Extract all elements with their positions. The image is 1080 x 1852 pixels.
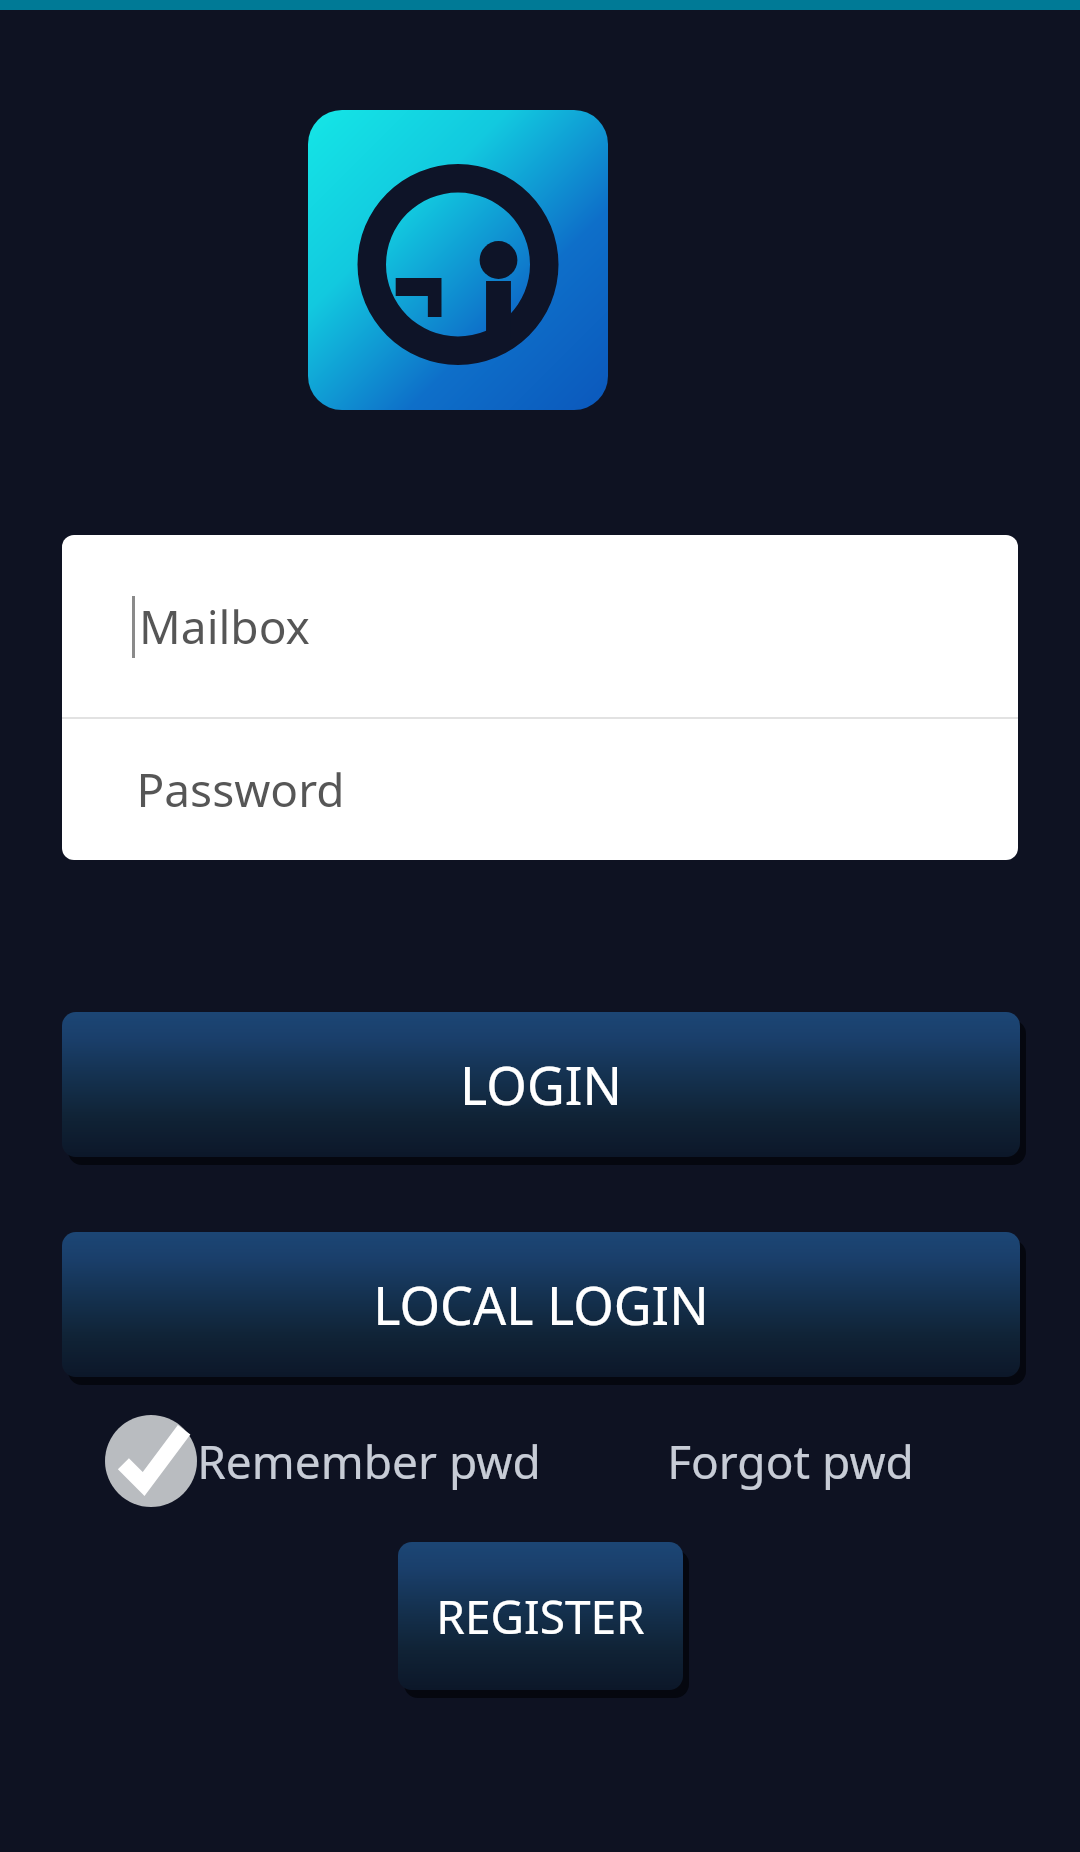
- staticText: REGISTER: [436, 1585, 645, 1648]
- button[interactable]: Remember pwd: [197, 1418, 541, 1504]
- staticText: LOGIN: [460, 1049, 622, 1120]
- button[interactable]: Mailbox: [62, 535, 1018, 717]
- button[interactable]: REGISTER: [398, 1542, 683, 1690]
- button[interactable]: Password: [62, 719, 1018, 860]
- staticText: LOCAL LOGIN: [373, 1269, 709, 1340]
- button[interactable]: Forgot pwd: [667, 1418, 914, 1504]
- staticText: Forgot pwd: [667, 1430, 914, 1493]
- button[interactable]: Remember password checkbox: [105, 1415, 197, 1507]
- staticText: Password: [136, 758, 345, 821]
- button[interactable]: LOCAL LOGIN: [62, 1232, 1020, 1377]
- staticText: Mailbox: [139, 595, 310, 658]
- button[interactable]: LOGIN: [62, 1012, 1020, 1157]
- staticText: Remember pwd: [197, 1430, 541, 1493]
